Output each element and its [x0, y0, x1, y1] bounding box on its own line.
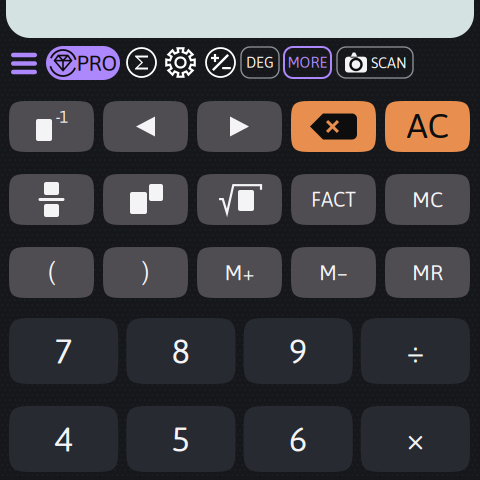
staticText: SCAN: [371, 55, 407, 71]
button[interactable]: 8: [126, 318, 235, 384]
button[interactable]: 5: [126, 406, 235, 472]
button[interactable]: ÷: [361, 318, 470, 384]
button[interactable]: MR: [385, 247, 470, 298]
button[interactable]: MC: [385, 174, 470, 225]
staticText: DEG: [246, 54, 274, 71]
button[interactable]: FACT: [291, 174, 376, 225]
button[interactable]: Plus or minus: [206, 48, 235, 77]
button[interactable]: M+: [197, 247, 282, 298]
button[interactable]: 6: [243, 406, 353, 472]
button[interactable]: SCAN: [337, 47, 413, 78]
button[interactable]: Move left: [103, 101, 188, 152]
button[interactable]: Summation: [127, 48, 156, 77]
staticText: 9: [289, 331, 308, 371]
staticText: MORE: [287, 54, 327, 71]
button[interactable]: DEG: [241, 47, 279, 78]
staticText: AC: [406, 106, 448, 145]
staticText: 6: [289, 419, 308, 459]
staticText: 5: [171, 419, 190, 459]
staticText: ): [142, 258, 149, 285]
staticText: PRO: [76, 51, 117, 75]
button[interactable]: Delete: [291, 101, 376, 152]
button[interactable]: ×: [361, 406, 470, 472]
button[interactable]: AC: [385, 101, 470, 152]
staticText: MR: [412, 260, 443, 285]
staticText: M–: [319, 260, 348, 285]
button[interactable]: Square root: [197, 174, 282, 225]
staticText: -1: [55, 108, 68, 126]
button[interactable]: Fraction: [9, 174, 94, 225]
button[interactable]: 7: [9, 318, 118, 384]
button[interactable]: 4: [9, 406, 118, 472]
button[interactable]: PRO: [46, 46, 120, 80]
button[interactable]: Move right: [197, 101, 282, 152]
button[interactable]: M–: [291, 247, 376, 298]
button[interactable]: ): [103, 247, 188, 298]
staticText: 8: [171, 331, 190, 371]
staticText: MC: [412, 187, 443, 212]
staticText: ÷: [406, 333, 424, 369]
button[interactable]: MORE: [284, 47, 331, 78]
staticText: 4: [54, 419, 73, 459]
button[interactable]: 9: [243, 318, 353, 384]
staticText: (: [48, 258, 55, 285]
staticText: 7: [54, 331, 73, 371]
button[interactable]: (: [9, 247, 94, 298]
staticText: ×: [406, 421, 424, 457]
button[interactable]: Power: [103, 174, 188, 225]
button[interactable]: Reciprocal: [9, 101, 94, 152]
staticText: M+: [224, 260, 254, 285]
button[interactable]: Menu: [11, 53, 37, 74]
button[interactable]: Settings: [166, 48, 195, 77]
staticText: FACT: [311, 188, 356, 211]
